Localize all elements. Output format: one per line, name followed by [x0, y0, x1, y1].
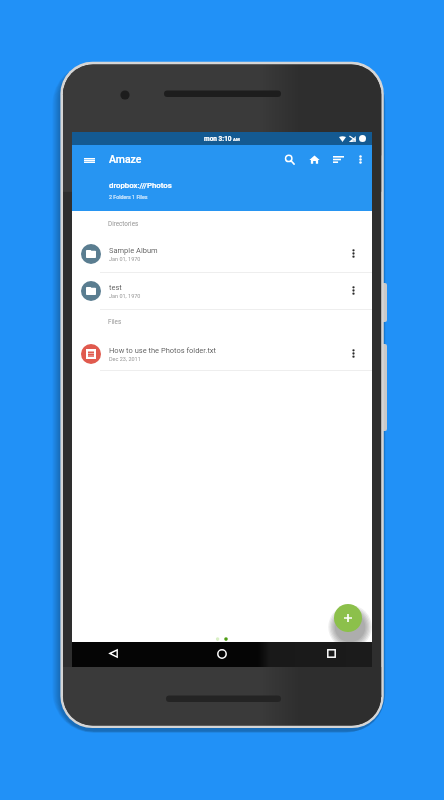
button[interactable]: Recents	[318, 641, 344, 666]
staticText: dropbox:///Photos	[109, 181, 172, 190]
button[interactable]: test	[72, 272, 372, 309]
staticText: Dec 23, 2011	[109, 356, 141, 362]
button[interactable]: Search	[278, 148, 301, 171]
staticText: 2 Folders 1 Files	[109, 194, 148, 200]
staticText: Jan 01, 1970	[109, 293, 141, 299]
staticText: Jan 01, 1970	[109, 256, 141, 262]
button[interactable]: More options	[335, 335, 372, 372]
button[interactable]: Back	[100, 641, 126, 666]
button[interactable]: More options	[335, 235, 372, 272]
button[interactable]: How to use the Photos folder.txt	[72, 335, 372, 372]
button[interactable]: Home	[209, 641, 235, 666]
staticText: Files	[108, 318, 122, 325]
button[interactable]: Add	[334, 604, 362, 632]
staticText: AM	[232, 137, 240, 142]
staticText: Sample Album	[109, 246, 158, 255]
button[interactable]: Sample Album	[72, 235, 372, 272]
staticText: mon 3:10	[204, 135, 232, 143]
button[interactable]: Sort	[327, 148, 350, 171]
button[interactable]: Home	[303, 148, 326, 171]
staticText: Directories	[108, 220, 139, 227]
button[interactable]: More options	[335, 272, 372, 309]
staticText: How to use the Photos folder.txt	[109, 346, 217, 355]
button[interactable]: Navigation menu	[78, 149, 100, 171]
staticText: Amaze	[109, 153, 142, 165]
button[interactable]: More options	[349, 148, 372, 171]
staticText: test	[109, 283, 122, 292]
